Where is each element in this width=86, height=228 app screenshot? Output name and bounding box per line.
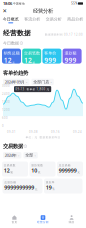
staticText: 12 (4, 56, 12, 65)
button[interactable]: 2024年09月 (3, 79, 29, 85)
staticText: 总交易额 (59, 164, 71, 167)
staticText: 3000 (2, 84, 10, 88)
staticText: ⌄ (18, 154, 20, 157)
staticText: 数据更新时间 09-17 12:00 (45, 33, 83, 36)
staticText: 2024年09月 (5, 79, 25, 84)
staticText: 2024年 (5, 153, 17, 158)
button[interactable]: 全部 (23, 152, 38, 158)
staticText: 经营分析 (33, 8, 53, 14)
staticText: 中国移动 (12, 2, 26, 5)
staticText: 09-24 (73, 130, 82, 134)
staticText: 退款笔数 (31, 164, 43, 167)
staticText: 09-01 (7, 130, 16, 134)
button[interactable]: 客流分析 (21, 15, 43, 25)
staticText: % (52, 187, 54, 191)
staticText: 交易笔数 (4, 164, 16, 167)
staticText: 999999 (59, 167, 77, 174)
staticText: 销售总额 (4, 51, 20, 56)
staticText: 18:06 (3, 1, 12, 6)
staticText: 退款额 (64, 51, 76, 56)
staticText: 单位：元 数据更新至昨日 (25, 136, 60, 139)
staticText: 元 (35, 188, 38, 191)
staticText: 全部门店 (33, 79, 49, 84)
staticText: 600 (2, 116, 8, 120)
staticText: 55% (71, 2, 77, 5)
button[interactable]: 2024年 (3, 152, 21, 158)
staticText: 10 (31, 167, 37, 174)
staticText: 商品分析 (67, 17, 83, 21)
staticText: 元 (77, 171, 80, 174)
staticText: 交易分析 (46, 17, 62, 21)
staticText: i (25, 144, 26, 148)
staticText: 19 (46, 184, 52, 191)
staticText: 12 (4, 167, 10, 174)
staticText: 笔 (10, 171, 13, 174)
staticText: 09-16 (51, 130, 60, 134)
staticText: 交易数据 (3, 143, 23, 150)
button[interactable]: 全部门店 (31, 79, 54, 85)
staticText: 笔 (32, 61, 35, 65)
staticText: ⌄ (26, 80, 28, 83)
staticText: 总退款额 (4, 181, 16, 184)
staticText: 1200 (2, 108, 10, 112)
button[interactable]: 商品分析 (64, 15, 86, 25)
staticText: ⌄ (34, 154, 36, 157)
staticText: 9999 (64, 56, 76, 73)
staticText: 12 (24, 56, 32, 65)
staticText: 今日数据 (3, 41, 19, 46)
button[interactable]: 退款额 (63, 49, 82, 64)
staticText: 元 (12, 61, 15, 65)
staticText: ⌄ (50, 80, 52, 83)
staticText: 客单价趋势 (3, 70, 28, 76)
staticText: 09-13 客单价 1,800 元 (16, 87, 50, 91)
staticText: 我的 (69, 221, 75, 224)
staticText: 首页 (11, 221, 17, 224)
staticText: 9999 (44, 56, 56, 73)
button[interactable]: 首页 (0, 211, 29, 227)
staticText: 今日概览 (3, 17, 19, 21)
staticText: 1800 (2, 100, 10, 104)
button[interactable]: 我的 (57, 211, 86, 227)
staticText: 经营数据 (3, 29, 31, 37)
button[interactable]: 经营分析 (29, 211, 57, 227)
staticText: 客单价 (44, 51, 56, 56)
button[interactable]: 今日概览 (0, 15, 21, 25)
staticText: ✕ (2, 8, 6, 14)
staticText: i (21, 41, 22, 45)
staticText: 客流分析 (24, 17, 40, 21)
button[interactable]: 交易笔数 (22, 49, 41, 64)
button[interactable]: 交易分析 (43, 15, 64, 25)
staticText: 全部 (25, 153, 33, 158)
staticText: 笔 (38, 171, 41, 174)
staticText: 2400 (2, 92, 10, 96)
staticText: 9999999999 (4, 184, 34, 191)
staticText: 退款率 (46, 181, 55, 184)
button[interactable]: 销售总额 (2, 49, 21, 64)
button[interactable]: Close (0, 7, 9, 15)
button[interactable]: 客单价 (42, 49, 61, 64)
staticText: 09-08 (29, 130, 38, 134)
staticText: 0 (2, 124, 4, 128)
staticText: 交易笔数 (24, 51, 40, 56)
staticText: 经营分析 (37, 221, 49, 224)
